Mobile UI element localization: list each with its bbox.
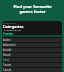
- staticText: Card: [3, 58, 9, 62]
- staticText: Casino: [3, 63, 12, 67]
- staticText: Popular: [3, 33, 14, 36]
- button[interactable]: Casual: [2, 68, 62, 72]
- button[interactable]: Card: [2, 58, 62, 62]
- staticText: Arcade: [3, 48, 12, 52]
- button[interactable]: Action: [2, 38, 62, 42]
- staticText: Casual: [3, 68, 12, 72]
- staticText: Action: [3, 38, 11, 42]
- staticText: All game genres: [3, 29, 22, 32]
- button[interactable]: Arcade: [2, 48, 62, 52]
- button[interactable]: Casino: [2, 63, 62, 67]
- staticText: Find your favourite games faster: [13, 4, 52, 14]
- staticText: Adventure: [3, 43, 16, 47]
- button[interactable]: Adventure: [2, 43, 62, 47]
- button[interactable]: Board: [2, 53, 62, 57]
- staticText: Categories: [3, 25, 24, 29]
- staticText: BROWSE ALL: [3, 22, 17, 24]
- staticText: Board: [3, 53, 11, 57]
